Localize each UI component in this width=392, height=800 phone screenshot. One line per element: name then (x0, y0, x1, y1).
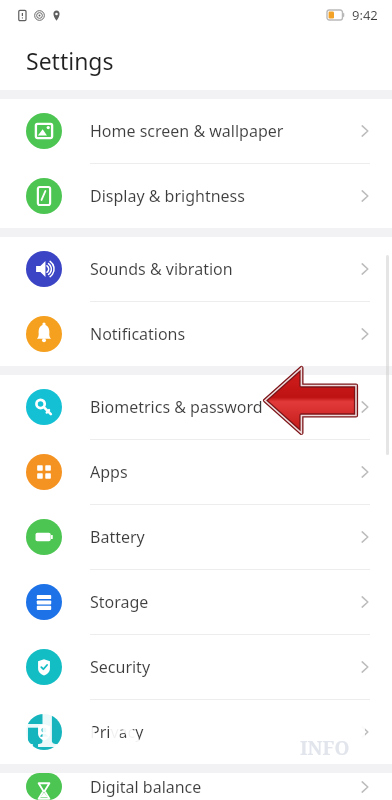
staticText: Battery (90, 526, 145, 548)
button[interactable]: Biometrics & password (0, 375, 392, 440)
staticText: Security (90, 656, 151, 678)
button[interactable]: Home screen & wallpaper (0, 99, 392, 164)
button[interactable]: Display & brightness (0, 164, 392, 228)
staticText: Storage (90, 591, 149, 613)
button[interactable]: Notifications (0, 302, 392, 366)
staticText: Apps (90, 461, 128, 483)
staticText: Digital balance (90, 776, 202, 798)
staticText: Biometrics & password (90, 396, 263, 418)
staticText: INFO (300, 735, 350, 761)
staticText: Sounds & vibration (90, 258, 233, 280)
staticText: 9:42 (352, 6, 378, 24)
button[interactable]: Digital balance (0, 773, 392, 800)
staticText: Settings (26, 45, 114, 76)
staticText: Privacy (90, 721, 144, 743)
button[interactable]: Battery (0, 505, 392, 570)
staticText: Notifications (90, 323, 186, 345)
staticText: Display & brightness (90, 185, 245, 207)
button[interactable]: Apps (0, 440, 392, 505)
staticText: HARDRESET (0, 686, 392, 764)
button[interactable]: Security (0, 635, 392, 700)
button[interactable]: Sounds & vibration (0, 237, 392, 302)
staticText: Home screen & wallpaper (90, 120, 284, 142)
button[interactable]: Storage (0, 570, 392, 635)
button[interactable]: Privacy (0, 700, 392, 764)
